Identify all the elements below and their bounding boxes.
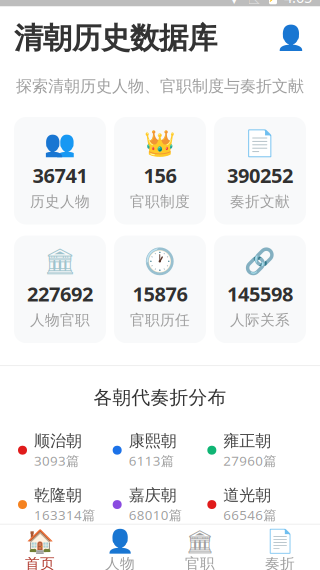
button[interactable]: 🕐 [114,235,206,343]
button[interactable]: 👤 [80,525,160,570]
staticText: ▼ [228,0,239,6]
staticText: 6113篇 [129,452,174,469]
button[interactable]: Profile [276,23,306,53]
button[interactable]: 📄 [214,117,306,224]
staticText: ◺ [248,0,259,6]
staticText: 官职历任 [130,311,190,329]
staticText: 👤 [106,529,134,555]
staticText: 163314篇 [34,506,95,524]
staticText: 顺治朝 [34,431,82,451]
button[interactable]: 🏛 [14,235,106,343]
staticText: 4:05 [284,0,312,7]
staticText: 康熙朝 [129,431,177,451]
staticText: 🏛 [185,529,214,555]
staticText: ⚡ [267,0,279,3]
button[interactable]: 🏛 [160,525,240,570]
staticText: 15876 [132,280,187,307]
button[interactable]: 🔗 [214,235,306,343]
staticText: 官职制度 [130,192,190,210]
staticText: 27960篇 [223,452,276,469]
staticText: 68010篇 [129,506,182,524]
staticText: 清朝历史数据库 [14,20,217,56]
staticText: 探索清朝历史人物、官职制度与奏折文献 [16,76,304,96]
staticText: 🕐 [144,247,176,276]
staticText: 人物官职 [30,311,90,329]
staticText: 390252 [227,162,293,188]
staticText: 官职 [185,555,215,570]
staticText: 嘉庆朝 [129,485,177,505]
button[interactable]: 👑 [114,117,206,224]
staticText: 道光朝 [223,485,271,505]
staticText: 历史人物 [30,192,90,210]
staticText: 66546篇 [223,506,276,524]
staticText: 各朝代奏折分布 [93,386,226,409]
staticText: 145598 [227,280,293,307]
staticText: 📄 [266,529,294,555]
button[interactable]: 🏠 [0,525,80,570]
staticText: 156 [143,162,176,188]
staticText: 雍正朝 [223,431,271,451]
staticText: 3093篇 [34,452,79,469]
staticText: 🏠 [26,529,54,555]
staticText: 👑 [144,128,176,157]
staticText: 人物 [105,555,135,570]
staticText: 首页 [25,555,55,570]
staticText: 36741 [32,162,87,188]
staticText: 奏折文献 [230,192,290,210]
staticText: 👥 [44,128,76,157]
staticText: 奏折 [265,555,295,570]
staticText: 乾隆朝 [34,485,82,505]
staticText: 🏛 [44,247,76,276]
staticText: 227692 [27,280,93,307]
button[interactable]: 📄 [240,525,320,570]
staticText: 👤 [276,25,306,52]
staticText: 🔗 [244,247,276,276]
staticText: 人际关系 [230,311,290,329]
button[interactable]: 👥 [14,117,106,224]
staticText: 📄 [244,128,276,157]
